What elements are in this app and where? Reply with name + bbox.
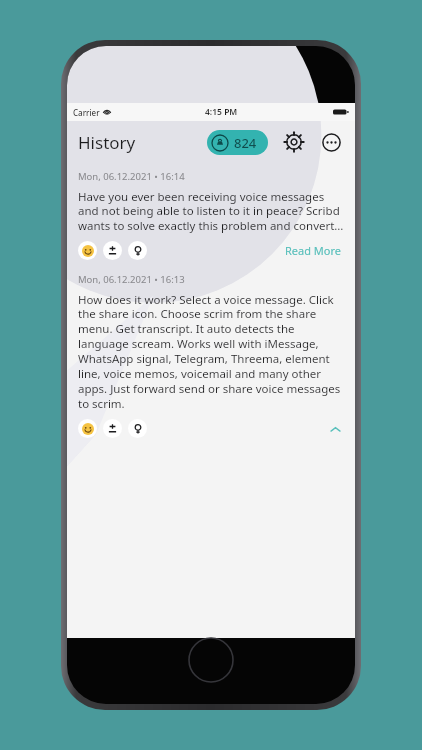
button[interactable]: Collapse [326, 420, 344, 438]
button[interactable]: Adjust [103, 419, 122, 438]
staticText: Mon, 06.12.2021 • 16:14 [78, 170, 185, 183]
staticText: 4:15 PM [205, 106, 238, 118]
button[interactable]: Adjust [103, 241, 122, 260]
button[interactable]: React [78, 419, 97, 438]
button[interactable]: Pin [128, 419, 147, 438]
staticText: History [78, 131, 136, 154]
button[interactable]: React [78, 241, 97, 260]
staticText: Carrier [73, 107, 100, 118]
staticText: Have you ever been receiving voice messa… [78, 189, 344, 234]
button[interactable]: 824 [207, 130, 268, 155]
button[interactable]: Settings [281, 129, 307, 155]
staticText: Read More [285, 243, 342, 258]
button[interactable]: Read More [283, 241, 344, 260]
staticText: How does it work? Select a voice message… [78, 292, 344, 412]
button[interactable]: Pin [128, 241, 147, 260]
staticText: 824 [234, 134, 257, 152]
button[interactable]: More options [318, 129, 344, 155]
staticText: Mon, 06.12.2021 • 16:13 [78, 273, 185, 286]
